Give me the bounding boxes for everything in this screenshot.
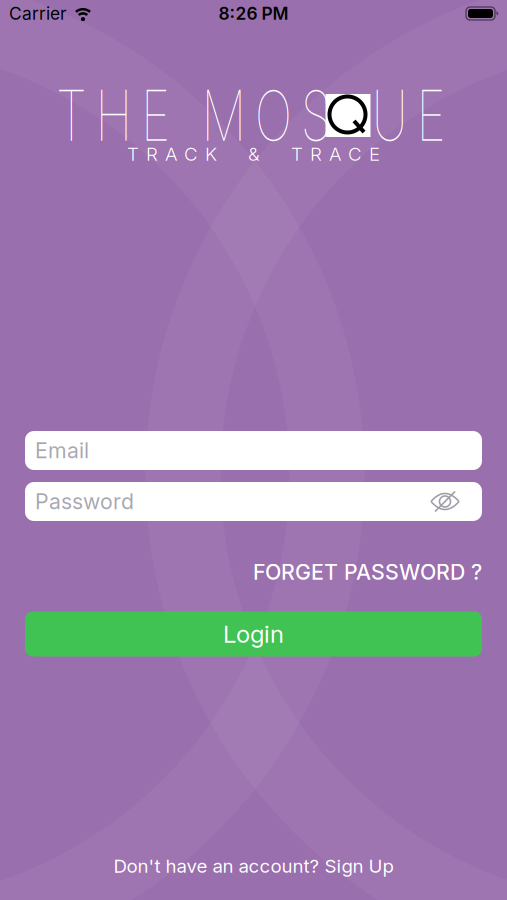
staticText: Carrier xyxy=(9,3,67,24)
staticText: TRACK & TRACE xyxy=(127,143,380,165)
staticText: FORGET PASSWORD ? xyxy=(253,559,482,585)
button[interactable]: Don't have an account? Sign Up xyxy=(113,855,393,877)
staticText: Password xyxy=(35,489,134,514)
staticText: UE xyxy=(357,75,459,156)
button[interactable]: FORGET PASSWORD ? xyxy=(253,559,482,585)
staticText: Login xyxy=(223,620,284,648)
staticText: 8:26 PM xyxy=(218,3,288,24)
button[interactable]: Email xyxy=(25,431,482,470)
button[interactable]: Password xyxy=(25,482,482,521)
staticText: Don't have an account? Sign Up xyxy=(113,855,393,877)
button[interactable]: Login xyxy=(25,611,482,656)
staticText: THE MOS xyxy=(2,75,384,156)
staticText: Email xyxy=(35,438,89,463)
